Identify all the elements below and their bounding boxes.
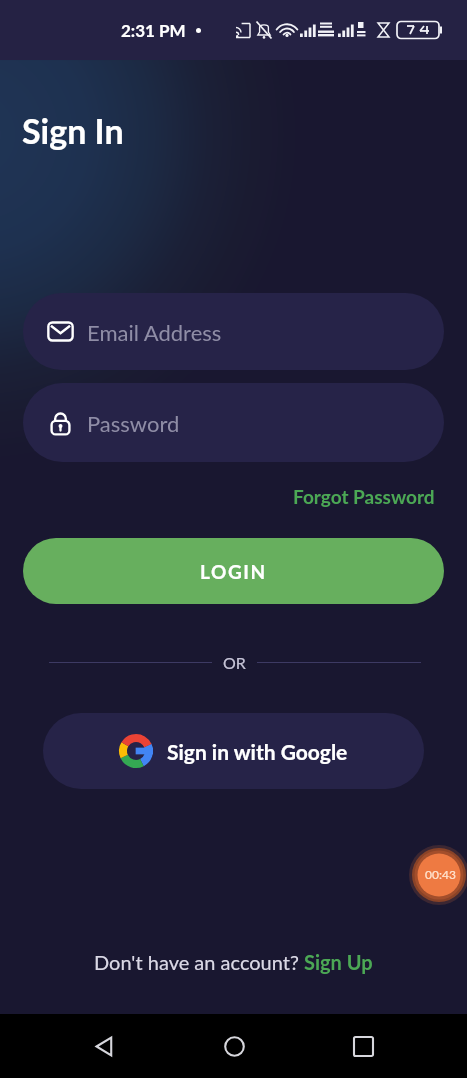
button[interactable]: Recent apps xyxy=(341,1024,385,1068)
staticText: Don't have an account? xyxy=(94,950,304,974)
button[interactable]: Sign in with Google xyxy=(43,713,424,789)
button[interactable]: Password xyxy=(23,383,444,462)
button[interactable]: Email Address xyxy=(23,293,444,370)
staticText: Email Address xyxy=(87,319,222,345)
staticText: OR xyxy=(223,653,246,672)
staticText: LOGIN xyxy=(200,560,267,583)
button[interactable]: LOGIN xyxy=(23,538,444,604)
button[interactable]: Sign Up xyxy=(304,950,373,974)
staticText: 00:43 xyxy=(425,867,456,881)
staticText: Password xyxy=(87,410,180,436)
button[interactable]: Forgot Password xyxy=(289,481,439,512)
staticText: Sign in with Google xyxy=(167,739,348,764)
staticText: 2:31 PM xyxy=(121,20,186,40)
staticText: Sign In xyxy=(22,110,124,151)
button[interactable]: Home xyxy=(212,1024,256,1068)
button[interactable]: Back xyxy=(82,1024,126,1068)
button[interactable]: Screen recorder timer xyxy=(409,845,467,905)
